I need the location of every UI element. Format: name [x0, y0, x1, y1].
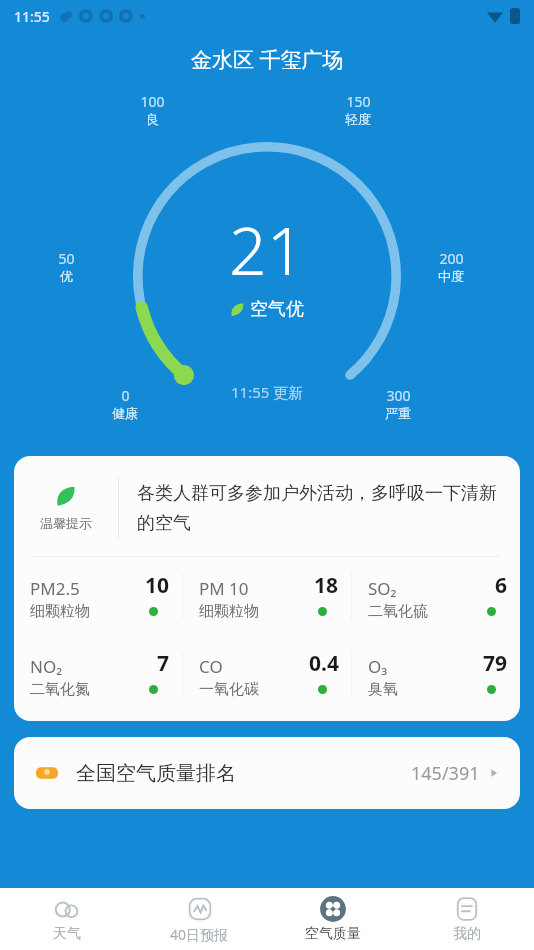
- staticText: 轻度: [345, 111, 371, 127]
- staticText: 11:55: [14, 7, 50, 26]
- staticText: NO₂: [30, 655, 63, 678]
- staticText: 18: [314, 571, 339, 600]
- button[interactable]: 全国空气质量排名: [14, 737, 520, 809]
- staticText: 50: [58, 249, 75, 268]
- staticText: CO: [199, 655, 223, 678]
- staticText: 40日预报: [170, 925, 229, 944]
- staticText: 细颗粒物: [199, 602, 259, 621]
- button[interactable]: 40日预报: [133, 888, 266, 950]
- staticText: 严重: [385, 405, 411, 421]
- staticText: 11:55 更新: [231, 382, 304, 402]
- button[interactable]: 天气: [0, 888, 133, 950]
- staticText: PM2.5: [30, 577, 80, 600]
- staticText: 天气: [53, 925, 81, 943]
- staticText: 金水区 千玺广场: [191, 45, 344, 74]
- staticText: 一氧化碳: [199, 680, 259, 699]
- staticText: 0: [121, 386, 130, 405]
- staticText: 200: [439, 249, 464, 268]
- staticText: 臭氧: [368, 680, 398, 699]
- staticText: SO₂: [368, 577, 397, 600]
- staticText: 我的: [453, 925, 481, 943]
- staticText: 100: [140, 92, 165, 111]
- staticText: 优: [60, 268, 73, 284]
- staticText: 79: [483, 649, 508, 678]
- staticText: 各类人群可多参加户外活动，多呼吸一下清新的空气: [137, 482, 500, 535]
- staticText: 300: [386, 386, 411, 405]
- button[interactable]: 我的: [400, 888, 534, 950]
- staticText: 细颗粒物: [30, 602, 90, 621]
- staticText: 0.4: [309, 649, 339, 678]
- staticText: 健康: [112, 405, 138, 421]
- staticText: 10: [145, 571, 170, 600]
- staticText: 中度: [438, 268, 464, 284]
- staticText: 7: [157, 649, 170, 678]
- staticText: 150: [346, 92, 371, 111]
- staticText: PM 10: [199, 577, 249, 600]
- staticText: O₃: [368, 655, 388, 678]
- staticText: 6: [495, 571, 508, 600]
- staticText: 21: [229, 204, 305, 294]
- staticText: 全国空气质量排名: [76, 761, 236, 786]
- staticText: 145/391: [411, 761, 480, 786]
- staticText: 空气优: [250, 298, 304, 321]
- staticText: 二氧化氮: [30, 680, 90, 699]
- button[interactable]: 空气质量: [266, 888, 400, 950]
- staticText: 温馨提示: [40, 515, 92, 531]
- staticText: 空气质量: [305, 925, 361, 943]
- staticText: 良: [146, 111, 159, 127]
- staticText: 二氧化硫: [368, 602, 428, 621]
